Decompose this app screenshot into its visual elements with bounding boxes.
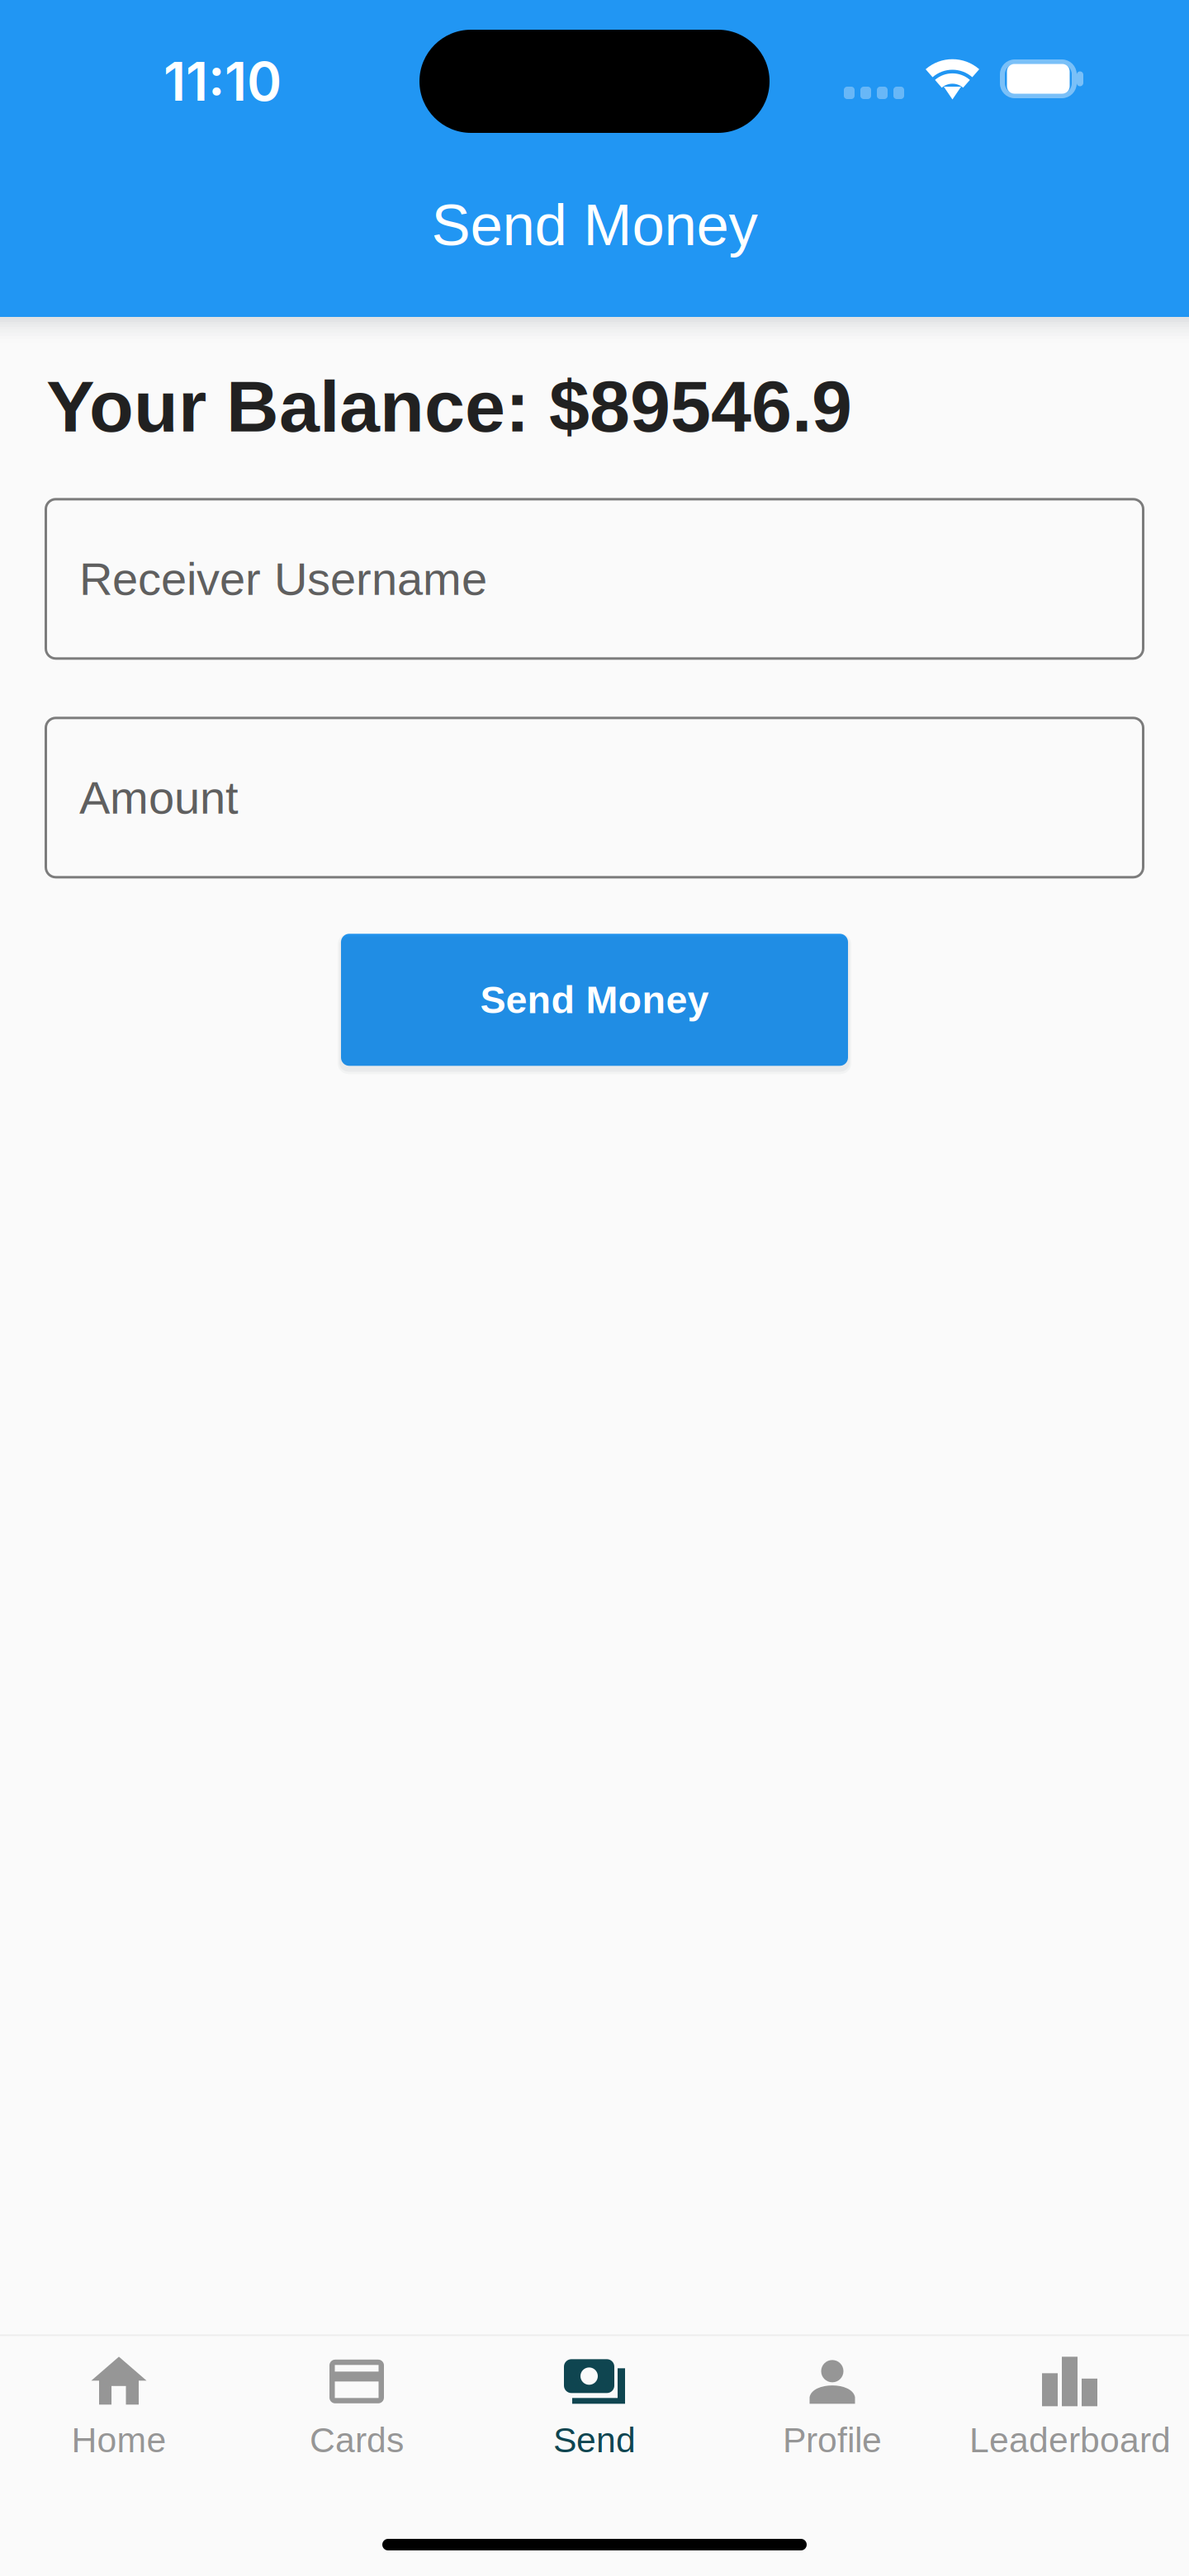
staticText: 11:10 [163, 50, 282, 113]
button[interactable]: Send Money [341, 934, 848, 1066]
staticText: Profile [783, 2420, 882, 2460]
button[interactable]: Leaderboard [951, 2336, 1189, 2484]
staticText: Cards [310, 2420, 404, 2460]
staticText: Home [71, 2420, 166, 2460]
staticText: Send Money [480, 978, 709, 1021]
staticText: Your Balance: $89546.9 [46, 366, 852, 447]
staticText: Send [553, 2420, 636, 2460]
button[interactable]: Send [476, 2336, 713, 2484]
button[interactable]: Profile [713, 2336, 951, 2484]
staticText: Amount [79, 772, 239, 823]
button[interactable]: Cards [238, 2336, 476, 2484]
staticText: Leaderboard [969, 2420, 1171, 2460]
staticText: Receiver Username [79, 553, 487, 605]
staticText: Send Money [431, 192, 758, 257]
button[interactable]: Home [0, 2336, 238, 2484]
